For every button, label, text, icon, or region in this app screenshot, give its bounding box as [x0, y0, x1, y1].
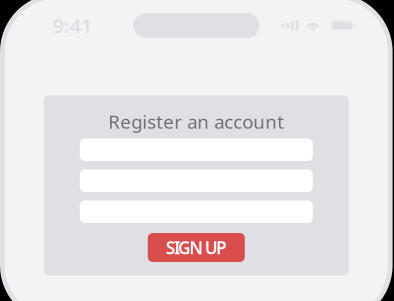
staticText: SIGN UP: [166, 236, 227, 259]
staticText: 9:41: [53, 12, 92, 39]
button[interactable]: [80, 200, 313, 223]
staticText: Register an account: [108, 109, 284, 134]
button[interactable]: [80, 138, 313, 161]
button[interactable]: SIGN UP: [148, 233, 245, 262]
